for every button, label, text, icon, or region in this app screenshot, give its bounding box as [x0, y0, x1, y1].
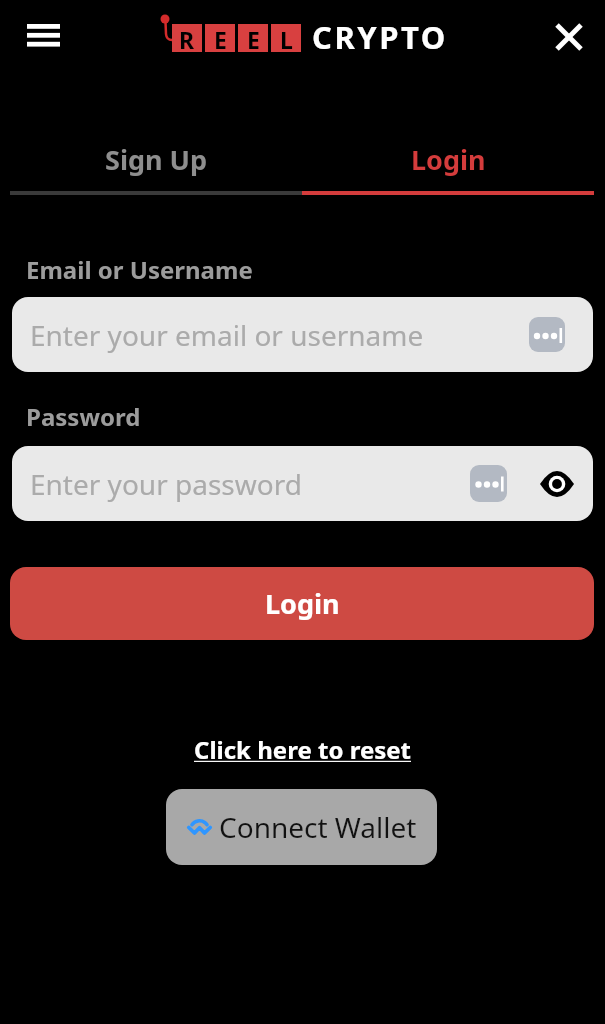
staticText: Login: [411, 141, 486, 178]
staticText: E: [214, 24, 227, 52]
staticText: R: [179, 24, 195, 52]
staticText: Login: [265, 585, 340, 622]
button[interactable]: [540, 471, 574, 497]
button[interactable]: [549, 17, 589, 57]
button[interactable]: [20, 17, 67, 55]
staticText: Password: [26, 400, 141, 433]
staticText: Enter your email or username: [30, 316, 424, 354]
button[interactable]: Login: [302, 133, 594, 186]
button[interactable]: Enter your password: [12, 446, 593, 521]
button[interactable]: Connect Wallet: [166, 789, 437, 865]
button[interactable]: Sign Up: [10, 133, 302, 186]
staticText: Enter your password: [30, 465, 302, 503]
staticText: CRYPTO: [312, 16, 448, 58]
button[interactable]: Login: [10, 567, 594, 640]
staticText: L: [280, 24, 293, 52]
button[interactable]: Click here to reset: [0, 728, 605, 770]
staticText: Click here to reset: [194, 733, 412, 766]
staticText: Sign Up: [105, 141, 208, 178]
staticText: Connect Wallet: [219, 808, 417, 846]
staticText: E: [247, 24, 260, 52]
staticText: Email or Username: [26, 253, 253, 286]
button[interactable]: Enter your email or username: [12, 297, 593, 372]
